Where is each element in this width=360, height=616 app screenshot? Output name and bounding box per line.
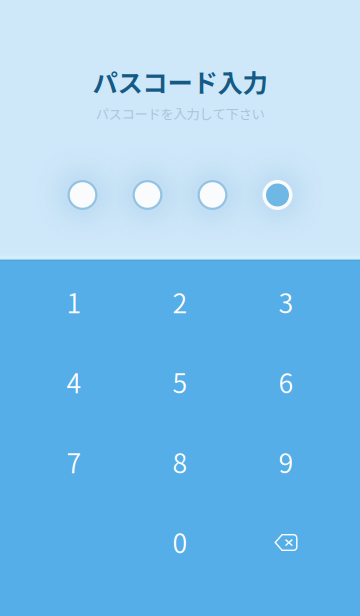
button[interactable]: 0 xyxy=(127,501,233,581)
button[interactable]: 3 xyxy=(233,261,339,341)
button[interactable]: 6 xyxy=(233,341,339,421)
staticText: 7 xyxy=(66,442,81,481)
staticText: 0 xyxy=(172,522,187,561)
staticText: パスコードを入力して下さい xyxy=(95,104,264,123)
button[interactable]: 8 xyxy=(127,421,233,501)
staticText: 6 xyxy=(278,362,293,401)
button[interactable]: 5 xyxy=(127,341,233,421)
button[interactable]: 2 xyxy=(127,261,233,341)
button[interactable]: 4 xyxy=(21,341,127,421)
button[interactable]: 1 xyxy=(21,261,127,341)
button[interactable]: Delete xyxy=(233,501,339,581)
staticText: 9 xyxy=(278,442,293,481)
staticText: 2 xyxy=(172,282,187,321)
button[interactable]: 7 xyxy=(21,421,127,501)
staticText: 3 xyxy=(278,282,293,321)
staticText: 8 xyxy=(172,442,187,481)
staticText: パスコード入力 xyxy=(92,63,267,100)
staticText: 4 xyxy=(66,362,81,401)
button[interactable]: 9 xyxy=(233,421,339,501)
staticText: 5 xyxy=(172,362,187,401)
staticText: 1 xyxy=(66,282,81,321)
